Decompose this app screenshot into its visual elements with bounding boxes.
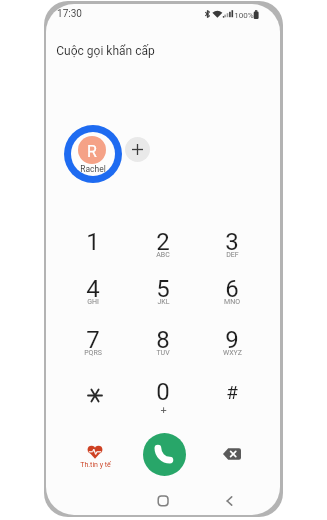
staticText: 0 xyxy=(156,378,170,406)
button[interactable]: # xyxy=(200,372,264,412)
staticText: 9 xyxy=(225,326,239,354)
button[interactable] xyxy=(214,489,244,513)
staticText: JKL xyxy=(157,298,170,306)
button[interactable]: 0 xyxy=(131,375,195,421)
staticText: R xyxy=(87,142,97,161)
staticText: # xyxy=(226,381,238,403)
button[interactable]: 2 xyxy=(131,225,195,271)
button[interactable] xyxy=(64,125,122,183)
button[interactable]: 6 xyxy=(200,272,264,318)
staticText: 7 xyxy=(86,326,100,354)
staticText: 1 xyxy=(86,228,100,256)
button[interactable] xyxy=(143,433,186,476)
staticText: Cuộc gọi khẩn cấp xyxy=(56,44,155,58)
button[interactable]: 8 xyxy=(131,323,195,369)
staticText: 6 xyxy=(225,275,239,303)
staticText: + xyxy=(160,404,167,417)
staticText: 17:30 xyxy=(57,8,82,20)
staticText: PQRS xyxy=(84,349,102,357)
staticText: MNO xyxy=(224,298,240,306)
staticText: 100% xyxy=(234,11,254,20)
button[interactable]: 1 xyxy=(61,225,125,271)
button[interactable]: 9 xyxy=(200,323,264,369)
staticText: 5 xyxy=(156,275,170,303)
button[interactable]: 3 xyxy=(200,225,264,271)
button[interactable]: 5 xyxy=(131,272,195,318)
staticText: 2 xyxy=(156,228,170,256)
button[interactable]: 7 xyxy=(61,323,125,369)
staticText: TUV xyxy=(156,349,170,357)
staticText: DEF xyxy=(226,251,239,259)
staticText: 8 xyxy=(156,326,170,354)
button[interactable]: Th.tin y tế xyxy=(67,434,123,478)
button[interactable]: 4 xyxy=(61,272,125,318)
staticText: Rachel xyxy=(80,164,106,174)
button[interactable] xyxy=(212,439,252,469)
button[interactable] xyxy=(125,137,150,162)
button[interactable] xyxy=(61,372,125,412)
staticText: WXYZ xyxy=(223,349,242,357)
staticText: ABC xyxy=(156,251,170,259)
button[interactable] xyxy=(148,489,178,513)
staticText: GHI xyxy=(87,298,99,306)
staticText: 4 xyxy=(86,275,100,303)
staticText: Th.tin y tế xyxy=(80,461,111,469)
staticText: 3 xyxy=(225,228,239,256)
